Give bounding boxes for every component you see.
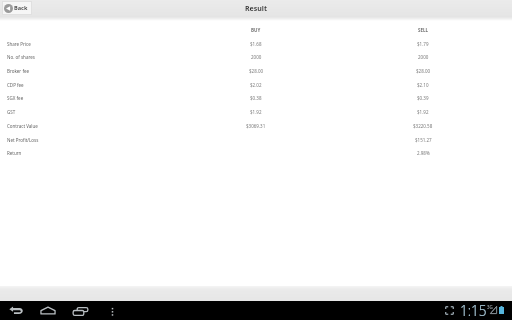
staticText: $1.79 [417,41,429,47]
staticText: 1:15 [460,301,487,320]
button[interactable]: Contract Value [0,120,512,134]
staticText: $3069.31 [246,123,266,129]
staticText: SELL [418,27,429,33]
staticText: 2.98% [417,150,430,156]
button[interactable]: GST [0,106,512,120]
staticText: $151.27 [415,137,432,143]
staticText: Result [245,4,267,14]
staticText: BUY [251,27,261,33]
button[interactable]: Return [0,147,512,161]
button[interactable]: Home [38,301,58,320]
staticText: $1.68 [250,41,262,47]
staticText: 3G [487,304,493,310]
button[interactable]: Menu [105,304,119,318]
button[interactable]: Back [2,1,32,15]
staticText: Net Profit/Loss [7,137,39,143]
staticText: $1.92 [250,109,262,115]
staticText: $0.38 [250,95,262,101]
button[interactable]: SGX fee [0,92,512,106]
button[interactable]: Share Price [0,38,512,52]
staticText: $28.00 [249,68,264,74]
staticText: GST [7,109,16,115]
staticText: Return [7,150,22,156]
staticText: CDP fee [7,82,24,88]
staticText: 2000 [418,54,429,60]
staticText: 2000 [251,54,262,60]
button[interactable]: Back [6,301,26,320]
staticText: Broker fee [7,68,30,74]
staticText: $2.10 [417,82,429,88]
button[interactable]: CDP fee [0,79,512,93]
button[interactable]: No. of shares [0,51,512,65]
staticText: $2.02 [250,82,262,88]
staticText: $1.92 [417,109,429,115]
staticText: $0.39 [417,95,429,101]
staticText: $3220.58 [413,123,433,129]
button[interactable]: Broker fee [0,65,512,79]
staticText: Contract Value [7,123,38,129]
staticText: Share Price [7,41,31,47]
staticText: SGX fee [7,95,24,101]
staticText: No. of shares [7,54,35,60]
button[interactable]: Recent apps [70,302,90,320]
button[interactable]: Net Profit/Loss [0,134,512,148]
staticText: $28.00 [416,68,431,74]
staticText: Back [14,4,28,12]
